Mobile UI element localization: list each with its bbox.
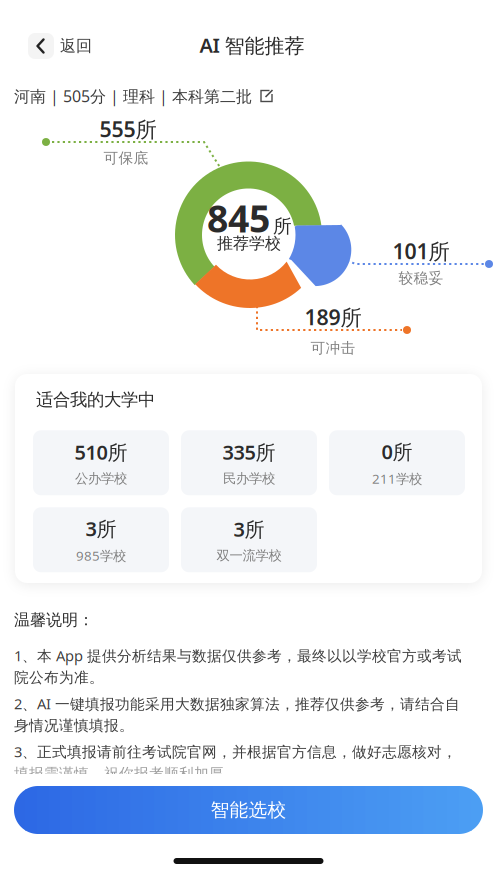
staticText: 返回 [60, 36, 92, 56]
staticText: 民办学校 [223, 470, 275, 487]
staticText: 温馨说明： [14, 610, 94, 630]
staticText: 845 [207, 193, 270, 243]
button[interactable]: 修改条件 [14, 85, 274, 107]
button[interactable]: 返回 [28, 33, 92, 59]
staticText: 1、本 App 提供分析结果与数据仅供参考，最终以以学校官方或考试 [14, 646, 462, 665]
staticText: 填报需谨慎，祝你报考顺利加厚。 [14, 764, 239, 782]
staticText: 3所 [85, 515, 116, 542]
staticText: 所 [273, 215, 292, 238]
staticText: 3、正式填报请前往考试院官网，并根据官方信息，做好志愿核对， [14, 742, 457, 761]
staticText: 可保底 [103, 149, 148, 167]
staticText: 身情况谨慎填报。 [14, 716, 134, 734]
staticText: 985学校 [76, 547, 126, 564]
staticText: 较稳妥 [398, 269, 443, 287]
staticText: 3所 [233, 516, 264, 542]
staticText: 335所 [222, 439, 275, 465]
staticText: 院公布为准。 [14, 668, 104, 686]
staticText: 公办学校 [75, 470, 127, 487]
staticText: 101所 [392, 237, 449, 265]
staticText: 推荐学校 [217, 234, 281, 253]
staticText: 0所 [381, 438, 412, 465]
staticText: 可冲击 [310, 339, 355, 357]
staticText: 适合我的大学中 [36, 389, 155, 410]
staticText: 211学校 [372, 470, 422, 487]
staticText: 555所 [99, 115, 156, 143]
staticText: 2、AI 一键填报功能采用大数据独家算法，推荐仅供参考，请结合自 [14, 694, 460, 713]
staticText: 189所 [304, 303, 361, 331]
staticText: AI 智能推荐 [199, 32, 304, 58]
staticText: 智能选校 [210, 798, 286, 821]
staticText: 双一流学校 [216, 547, 281, 564]
staticText: 河南 | 505分 | 理科 | 本科第二批 [14, 85, 252, 107]
staticText: 510所 [74, 439, 127, 465]
button[interactable]: 智能选校 [14, 786, 483, 834]
